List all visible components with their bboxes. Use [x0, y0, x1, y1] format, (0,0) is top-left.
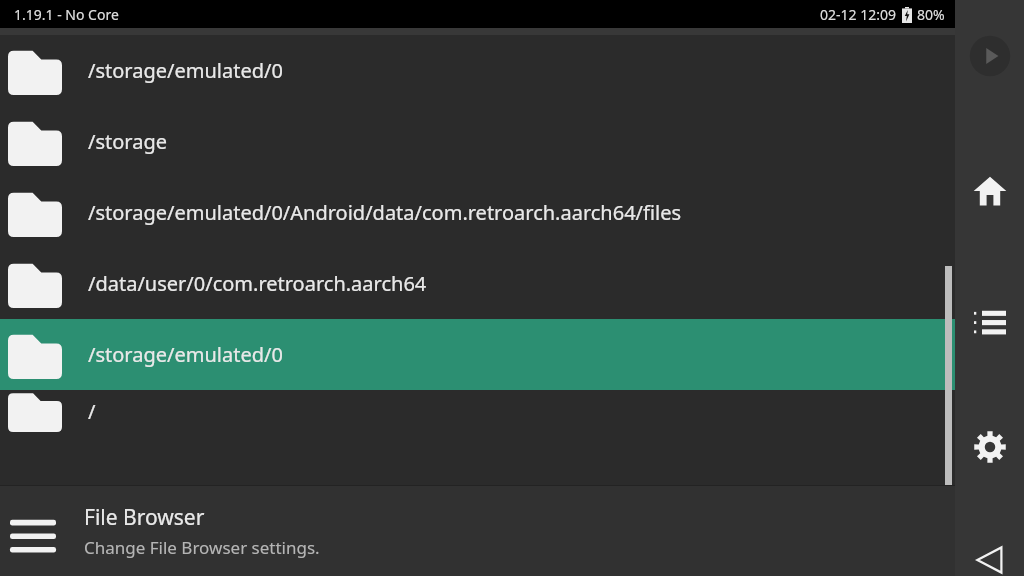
- staticText: 02-12 12:09: [820, 5, 896, 24]
- button[interactable]: /storage/emulated/0/Android/data/com.ret…: [0, 177, 955, 248]
- button[interactable]: Home: [964, 165, 1016, 217]
- staticText: /storage: [88, 128, 167, 155]
- button[interactable]: /storage: [0, 106, 955, 177]
- staticText: /data/user/0/com.retroarch.aarch64: [88, 270, 427, 297]
- staticText: Change File Browser settings.: [84, 536, 320, 559]
- button[interactable]: /data/user/0/com.retroarch.aarch64: [0, 248, 955, 319]
- button[interactable]: Settings: [964, 421, 1016, 473]
- button[interactable]: /storage/emulated/0: [0, 35, 955, 106]
- button[interactable]: /: [0, 390, 955, 432]
- button[interactable]: Back: [964, 543, 1016, 576]
- staticText: /storage/emulated/0/Android/data/com.ret…: [88, 199, 682, 226]
- staticText: 80%: [917, 5, 945, 24]
- staticText: /storage/emulated/0: [88, 57, 283, 84]
- button[interactable]: /storage/emulated/0: [0, 319, 955, 390]
- staticText: /: [88, 398, 96, 425]
- staticText: /storage/emulated/0: [88, 341, 283, 368]
- staticText: 1.19.1 - No Core: [14, 5, 119, 24]
- button[interactable]: Search: [891, 32, 943, 84]
- button[interactable]: Back: [0, 32, 52, 84]
- button[interactable]: Playlists: [964, 295, 1016, 347]
- staticText: Load Content: [65, 41, 224, 75]
- button[interactable]: File Browser: [0, 486, 955, 576]
- staticText: File Browser: [84, 503, 205, 532]
- button[interactable]: Resume: [967, 33, 1013, 79]
